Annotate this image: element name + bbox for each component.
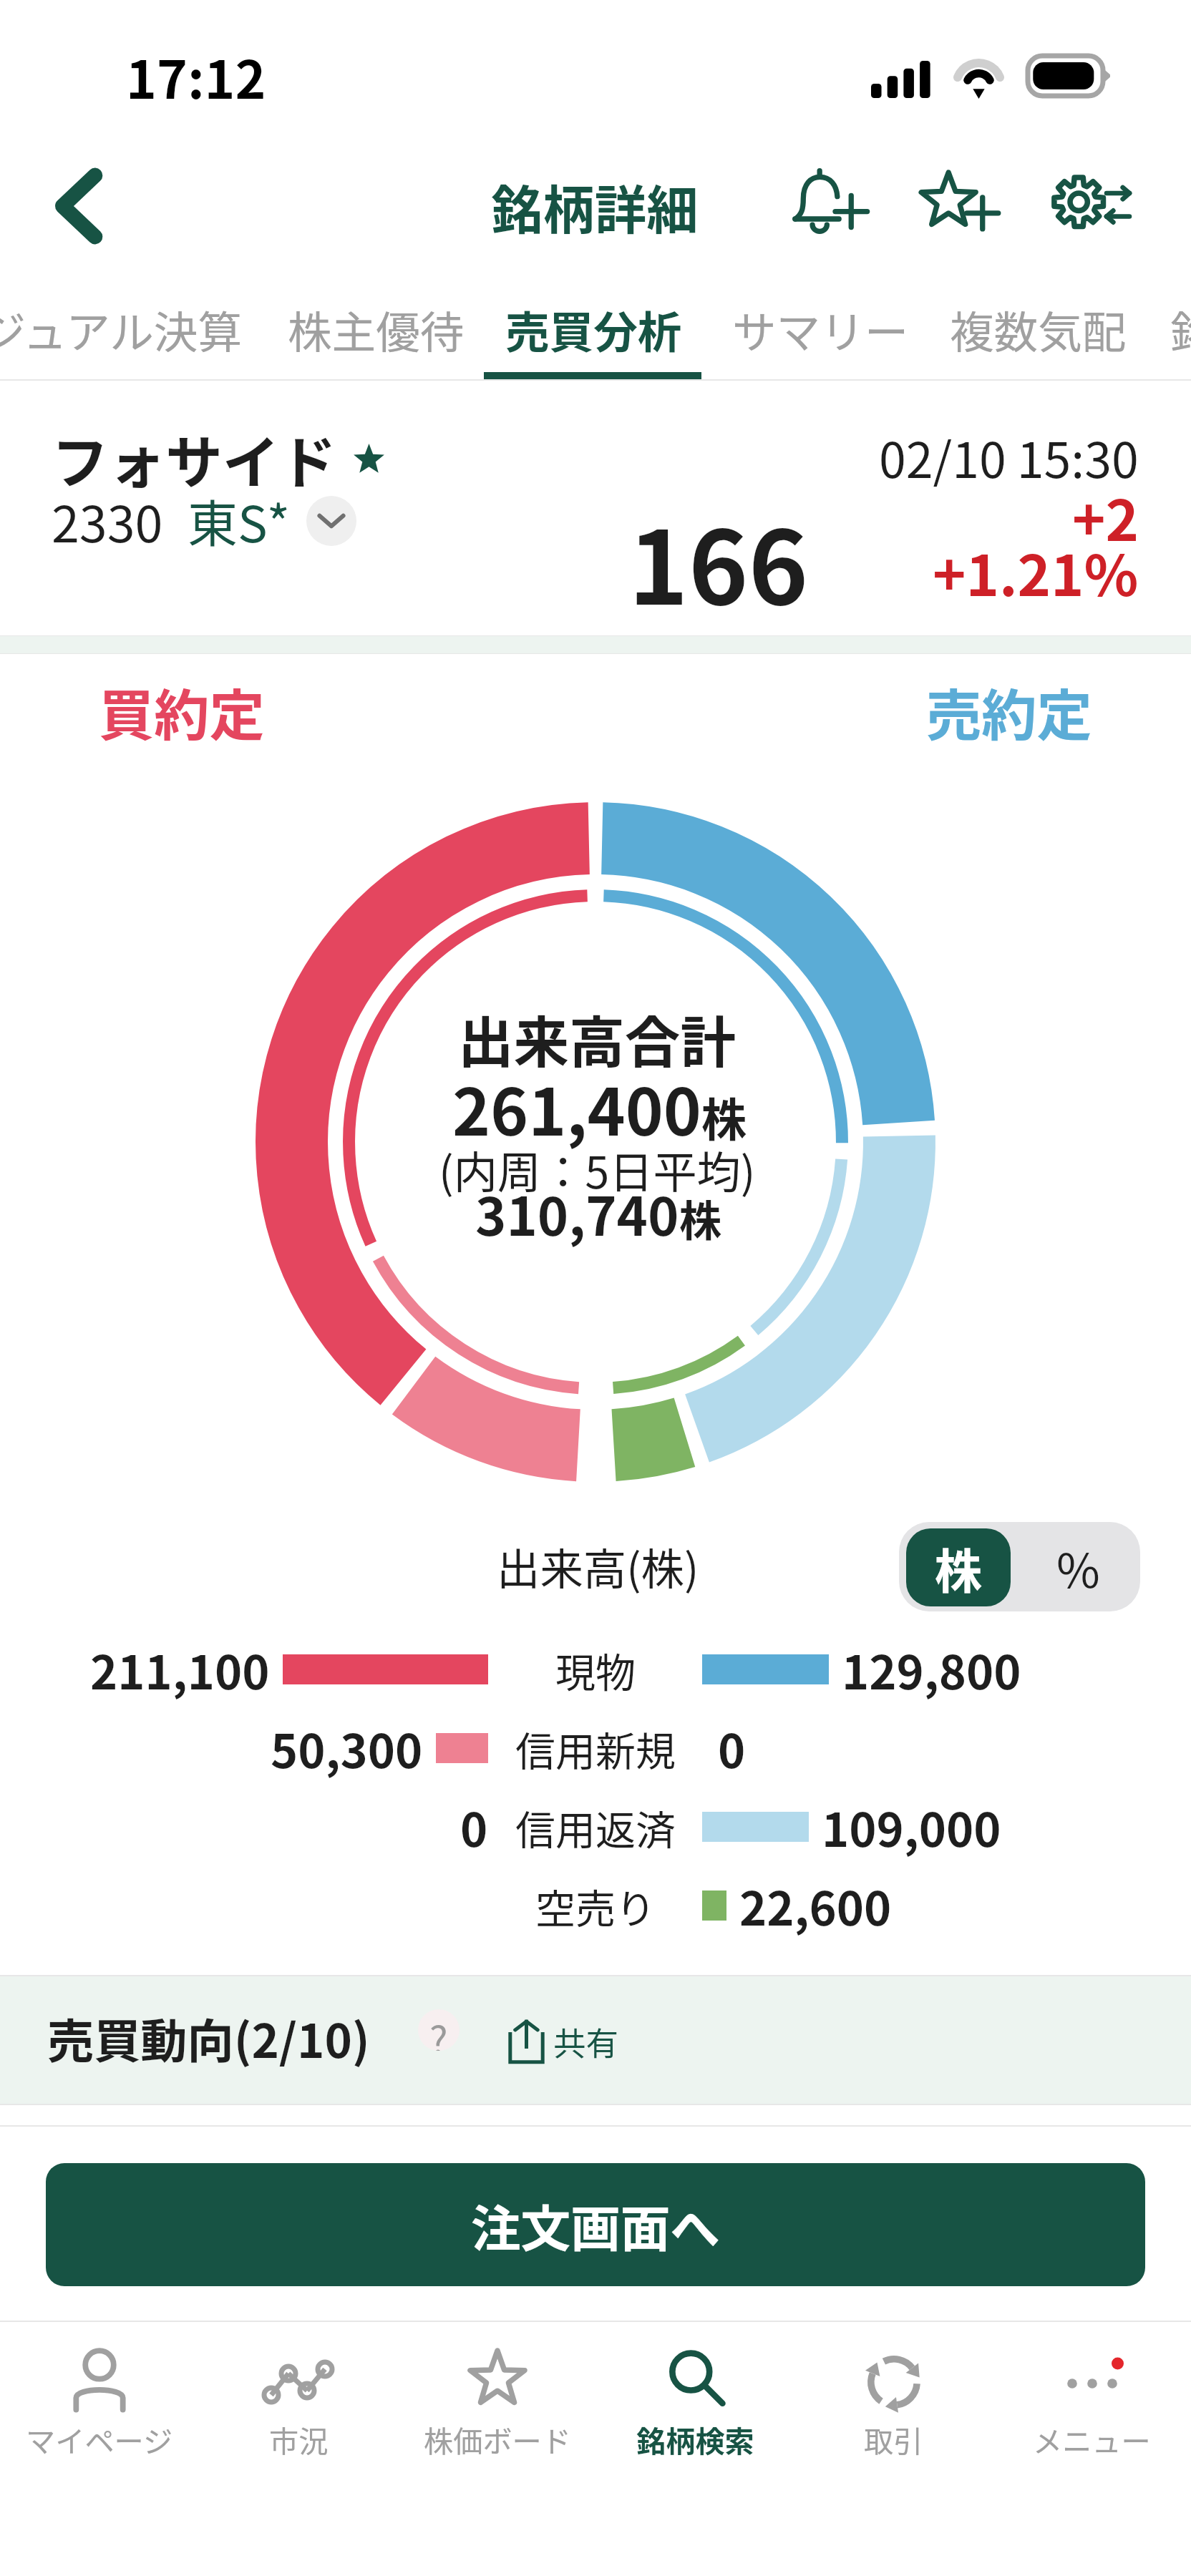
staticText: 出来高合計 <box>458 998 736 1078</box>
staticText: 市況 <box>269 2418 329 2461</box>
staticText: 出来高(株) <box>497 1535 699 1597</box>
button[interactable]: Add to favorites <box>895 133 1026 279</box>
staticText: 売買動向(2/10) <box>47 2004 370 2071</box>
staticText: +1.21% <box>933 531 1139 613</box>
button[interactable]: サマリー <box>732 279 900 381</box>
staticText: フォサイド <box>52 417 336 499</box>
button[interactable]: メニュー <box>993 2322 1191 2576</box>
staticText: 空売り <box>535 1877 656 1935</box>
button[interactable]: % <box>1016 1522 1140 1611</box>
staticText: マイページ <box>26 2418 173 2461</box>
staticText: 注文画面へ <box>471 2189 720 2261</box>
staticText: 売買分析 <box>505 298 680 361</box>
staticText: 129,800 <box>842 1636 1021 1703</box>
staticText: 22,600 <box>739 1872 892 1939</box>
staticText: 買約定 <box>99 671 265 751</box>
button[interactable]: マイページ <box>0 2322 199 2576</box>
staticText: 株 <box>679 1187 722 1249</box>
button[interactable]: 取引 <box>794 2322 993 2576</box>
button[interactable]: 共有 <box>505 2009 622 2074</box>
staticText: 166 <box>628 487 809 634</box>
staticText: 50,300 <box>271 1714 423 1782</box>
staticText: 17:12 <box>126 39 266 114</box>
staticText: 310,740 <box>475 1175 679 1252</box>
button[interactable]: Help <box>418 2009 460 2051</box>
staticText: 東S* <box>188 484 291 557</box>
button[interactable]: Market type <box>306 496 356 546</box>
button[interactable]: ビジュアル決算 <box>0 279 240 381</box>
staticText: 株価ボード <box>424 2418 571 2461</box>
button[interactable]: Back <box>0 132 155 279</box>
staticText: (内周：5日平均) <box>439 1138 756 1201</box>
button[interactable]: 株価ボード <box>398 2322 596 2576</box>
staticText: 株主優待 <box>288 298 460 361</box>
staticText: サマリー <box>732 298 900 361</box>
staticText: 261,400 <box>452 1061 701 1154</box>
staticText: 109,000 <box>822 1793 1001 1860</box>
staticText: 株 <box>935 1533 982 1602</box>
staticText: ビジュアル決算 <box>0 298 240 361</box>
staticText: 2330 <box>52 484 163 557</box>
staticText: 0 <box>460 1793 488 1860</box>
staticText: ? <box>429 2009 448 2051</box>
button[interactable]: 複数気配 <box>950 279 1120 381</box>
staticText: 02/10 15:30 <box>879 421 1139 492</box>
staticText: 株 <box>701 1084 747 1150</box>
staticText: 信用返済 <box>515 1798 676 1856</box>
button[interactable]: 売買分析 <box>505 279 680 381</box>
staticText: 銘柄詳細 <box>491 169 699 244</box>
staticText: 複数気配 <box>950 298 1120 361</box>
button[interactable]: 市況 <box>199 2322 398 2576</box>
button[interactable]: Add price alert <box>765 133 895 279</box>
staticText: +2 <box>1072 476 1139 557</box>
staticText: 現物 <box>555 1641 636 1699</box>
button[interactable]: 株 <box>906 1528 1011 1606</box>
button[interactable]: Settings <box>1026 133 1156 279</box>
staticText: メニュー <box>1033 2418 1151 2461</box>
staticText: 取引 <box>864 2418 923 2461</box>
staticText: 211,100 <box>90 1636 270 1703</box>
staticText: 銘柄検索 <box>636 2418 754 2461</box>
button[interactable]: 銘柄情報 <box>1170 279 1191 381</box>
staticText: 0 <box>718 1714 746 1782</box>
staticText: 信用新規 <box>515 1719 676 1777</box>
staticText: % <box>1056 1533 1100 1601</box>
button[interactable]: 銘柄検索 <box>596 2322 794 2576</box>
button[interactable]: 注文画面へ <box>46 2163 1145 2286</box>
button[interactable]: 株主優待 <box>288 279 460 381</box>
staticText: 売約定 <box>926 671 1092 751</box>
staticText: 銘柄情報 <box>1170 298 1191 361</box>
staticText: 共有 <box>553 2018 619 2065</box>
